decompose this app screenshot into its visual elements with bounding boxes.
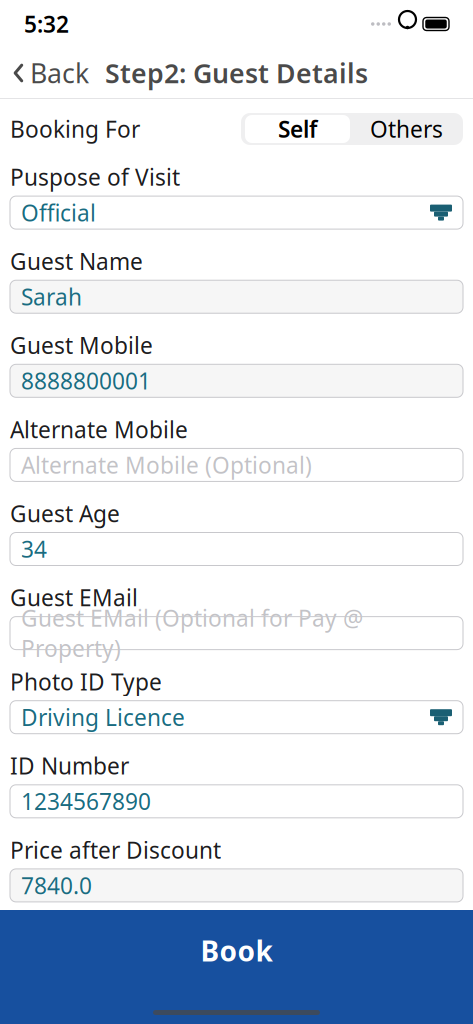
staticText: Sarah [21,282,82,312]
staticText: Alternate Mobile [10,414,188,444]
staticText: Puspose of Visit [10,162,180,192]
staticText: Price after Discount [10,835,221,865]
staticText: Guest Mobile [10,330,153,360]
staticText: Guest EMail [10,582,138,613]
staticText: Others [370,114,443,144]
button[interactable]: Self [243,113,352,145]
button[interactable]: Others [352,113,461,145]
staticText: Book [200,932,272,969]
staticText: Back [30,55,89,91]
staticText: ID Number [10,751,129,781]
staticText: Guest EMail (Optional for Pay @ Property… [21,603,363,663]
staticText: 7840.0 [21,870,92,900]
staticText: Official [21,198,96,228]
button[interactable]: Back [0,47,89,99]
staticText: Driving Licence [21,702,185,732]
staticText: 34 [21,534,47,564]
staticText: Photo ID Type [10,667,162,697]
button[interactable]: Driving Licence [10,701,463,734]
staticText: 5:32 [24,9,69,39]
staticText: Guest Age [10,498,120,528]
button[interactable]: Official [10,196,463,229]
staticText: Booking For [10,114,140,144]
staticText: Step2: Guest Details [105,55,368,91]
staticText: 1234567890 [21,786,151,816]
staticText: Guest Name [10,246,143,276]
staticText: Alternate Mobile (Optional) [21,450,312,480]
staticText: Self [278,114,317,144]
button[interactable]: Book [0,910,473,1024]
staticText: 8888800001 [21,366,151,396]
